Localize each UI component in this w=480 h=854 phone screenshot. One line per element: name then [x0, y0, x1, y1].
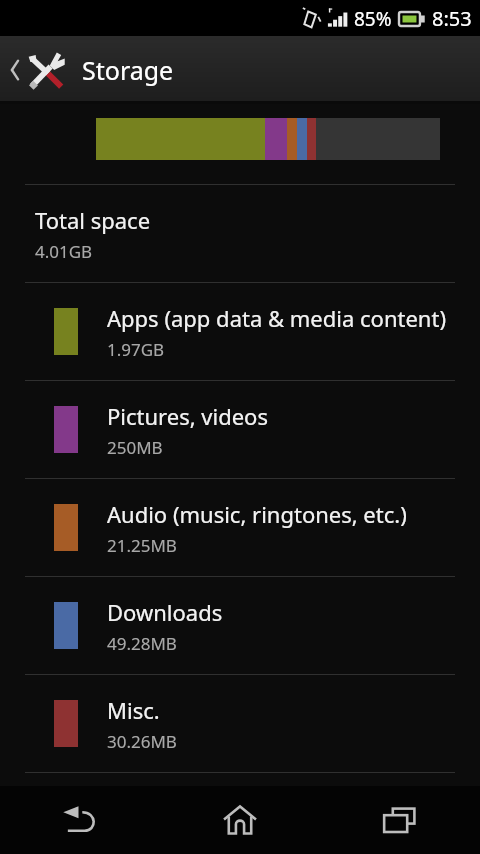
staticText: 4.01GB — [35, 240, 93, 263]
staticText: Downloads — [107, 597, 223, 627]
staticText: 1.97GB — [107, 338, 165, 361]
button[interactable]: Misc. — [0, 675, 480, 772]
staticText: Misc. — [107, 695, 160, 725]
staticText: Storage — [82, 53, 174, 87]
staticText: Audio (music, ringtones, etc.) — [107, 499, 407, 529]
staticText: Pictures, videos — [107, 401, 268, 431]
button[interactable]: Downloads — [0, 577, 480, 674]
button[interactable]: Audio (music, ringtones, etc.) — [0, 479, 480, 576]
button[interactable]: Pictures, videos — [0, 381, 480, 478]
button[interactable]: Apps (app data & media content) — [0, 283, 480, 380]
staticText: 49.28MB — [107, 632, 177, 655]
button[interactable]: Recent apps — [320, 786, 480, 854]
staticText: 30.26MB — [107, 730, 177, 753]
staticText: 21.25MB — [107, 534, 177, 557]
button[interactable]: Home — [160, 786, 320, 854]
button[interactable]: Navigate up, Storage — [0, 36, 480, 104]
staticText: Apps (app data & media content) — [107, 303, 446, 333]
staticText: 85% — [354, 6, 392, 32]
staticText: Total space — [35, 205, 151, 235]
button[interactable]: Total space — [0, 185, 480, 282]
button[interactable]: Back — [0, 786, 160, 854]
staticText: 8:53 — [432, 5, 472, 32]
staticText: 250MB — [107, 436, 163, 459]
